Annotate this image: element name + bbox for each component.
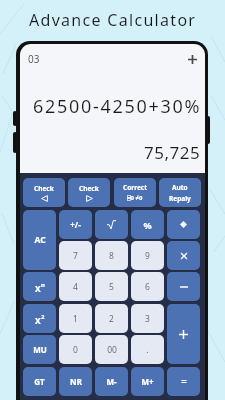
staticText: n bbox=[41, 281, 45, 289]
button[interactable]: Add bbox=[184, 51, 200, 67]
button[interactable]: M+ bbox=[131, 367, 164, 396]
staticText: M- bbox=[106, 376, 117, 387]
staticText: 7 bbox=[73, 250, 78, 262]
button[interactable]: +/- bbox=[59, 210, 92, 239]
button[interactable]: 4 bbox=[59, 272, 92, 301]
button[interactable]: 5 bbox=[95, 272, 128, 301]
button[interactable]: MU bbox=[23, 335, 56, 364]
staticText: ⌸0 ≠0 bbox=[127, 194, 143, 202]
staticText: 5 bbox=[109, 281, 114, 293]
button[interactable]: 00 bbox=[95, 335, 128, 364]
staticText: 3 bbox=[145, 313, 150, 325]
button[interactable]: % bbox=[131, 210, 164, 239]
button[interactable]: . bbox=[131, 335, 164, 364]
staticText: Check bbox=[79, 184, 99, 193]
button[interactable]: Backspace bbox=[167, 210, 200, 239]
staticText: 62500-4250+30% bbox=[33, 94, 202, 119]
button[interactable]: 9 bbox=[131, 241, 164, 270]
staticText: Auto bbox=[172, 183, 188, 192]
staticText: NR bbox=[70, 376, 82, 387]
staticText: Check bbox=[34, 184, 54, 193]
button[interactable]: 1 bbox=[59, 304, 92, 333]
button[interactable]: 8 bbox=[95, 241, 128, 270]
staticText: 0 bbox=[73, 344, 78, 356]
staticText: = bbox=[181, 375, 187, 388]
button[interactable]: NR bbox=[59, 367, 92, 396]
staticText: 00 bbox=[107, 344, 117, 356]
staticText: Repaly bbox=[169, 194, 191, 203]
staticText: 2 bbox=[109, 313, 114, 325]
staticText: 9 bbox=[145, 250, 150, 262]
button[interactable]: GT bbox=[23, 367, 56, 396]
staticText: Correct bbox=[123, 183, 147, 192]
staticText: X bbox=[35, 283, 41, 295]
button[interactable]: X bbox=[23, 272, 56, 301]
staticText: 2 bbox=[41, 313, 45, 321]
staticText: +/- bbox=[70, 219, 81, 230]
button[interactable]: 6 bbox=[131, 272, 164, 301]
button[interactable]: X bbox=[23, 304, 56, 333]
button[interactable]: Minus bbox=[167, 272, 200, 301]
staticText: 1 bbox=[73, 313, 78, 325]
staticText: 8 bbox=[109, 250, 114, 262]
staticText: . bbox=[146, 344, 149, 356]
button[interactable]: Check bbox=[23, 178, 65, 207]
staticText: Advance Calculator bbox=[29, 9, 197, 31]
button[interactable]: Plus bbox=[167, 304, 200, 364]
button[interactable]: Check bbox=[68, 178, 110, 207]
staticText: GT bbox=[34, 376, 45, 387]
button[interactable]: M- bbox=[95, 367, 128, 396]
button[interactable]: Correct bbox=[114, 178, 156, 207]
staticText: 6 bbox=[145, 281, 150, 293]
staticText: 4 bbox=[73, 281, 78, 293]
button[interactable]: AC bbox=[23, 210, 56, 270]
button[interactable]: Auto bbox=[159, 178, 201, 207]
staticText: 75,725 bbox=[144, 141, 201, 161]
button[interactable]: 2 bbox=[95, 304, 128, 333]
button[interactable]: 7 bbox=[59, 241, 92, 270]
button[interactable]: 3 bbox=[131, 304, 164, 333]
staticText: MU bbox=[33, 344, 47, 355]
button[interactable]: 0 bbox=[59, 335, 92, 364]
staticText: X bbox=[35, 315, 41, 327]
staticText: % bbox=[143, 219, 152, 231]
button[interactable]: = bbox=[167, 367, 200, 396]
button[interactable]: Multiply bbox=[167, 241, 200, 270]
staticText: 03 bbox=[28, 52, 40, 66]
button[interactable]: Square root bbox=[95, 210, 128, 239]
staticText: M+ bbox=[141, 376, 154, 387]
staticText: AC bbox=[34, 234, 46, 246]
